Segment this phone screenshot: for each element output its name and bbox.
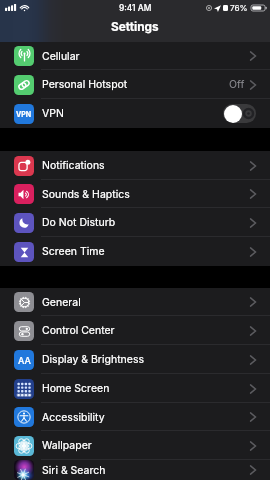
- staticText: Wallpaper: [42, 439, 92, 452]
- staticText: Settings: [111, 20, 159, 34]
- staticText: Do Not Disturb: [42, 216, 116, 229]
- button[interactable]: Accessibility: [0, 403, 270, 431]
- staticText: General: [42, 296, 81, 309]
- staticText: VPN: [16, 110, 32, 118]
- button[interactable]: Control Center: [0, 316, 270, 345]
- button[interactable]: Sounds & Haptics: [0, 180, 270, 208]
- staticText: Notifications: [42, 159, 105, 172]
- button[interactable]: Do Not Disturb: [0, 208, 270, 237]
- button[interactable]: Cellular: [0, 42, 270, 70]
- staticText: Sounds & Haptics: [42, 188, 130, 201]
- button[interactable]: Home Screen: [0, 374, 270, 403]
- staticText: Control Center: [42, 324, 115, 337]
- button[interactable]: Personal Hotspot: [0, 70, 270, 99]
- staticText: Accessibility: [42, 411, 105, 424]
- button[interactable]: Siri & Search: [0, 460, 270, 480]
- staticText: Off: [229, 78, 245, 91]
- button[interactable]: AA: [0, 345, 270, 374]
- button[interactable]: General: [0, 288, 270, 316]
- staticText: Home Screen: [42, 382, 110, 395]
- staticText: AA: [18, 355, 31, 366]
- button[interactable]: Screen Time: [0, 237, 270, 266]
- button[interactable]: Wallpaper: [0, 431, 270, 460]
- staticText: Cellular: [42, 50, 80, 63]
- staticText: Display & Brightness: [42, 353, 144, 366]
- staticText: 9:41 AM: [119, 3, 152, 13]
- staticText: Personal Hotspot: [42, 78, 128, 91]
- button[interactable]: VPN toggle: [223, 104, 256, 123]
- staticText: Siri & Search: [42, 464, 106, 477]
- staticText: VPN: [42, 107, 64, 120]
- staticText: Screen Time: [42, 245, 105, 258]
- staticText: 76%: [230, 3, 248, 13]
- button[interactable]: Notifications: [0, 151, 270, 180]
- button[interactable]: VPN: [0, 99, 270, 128]
